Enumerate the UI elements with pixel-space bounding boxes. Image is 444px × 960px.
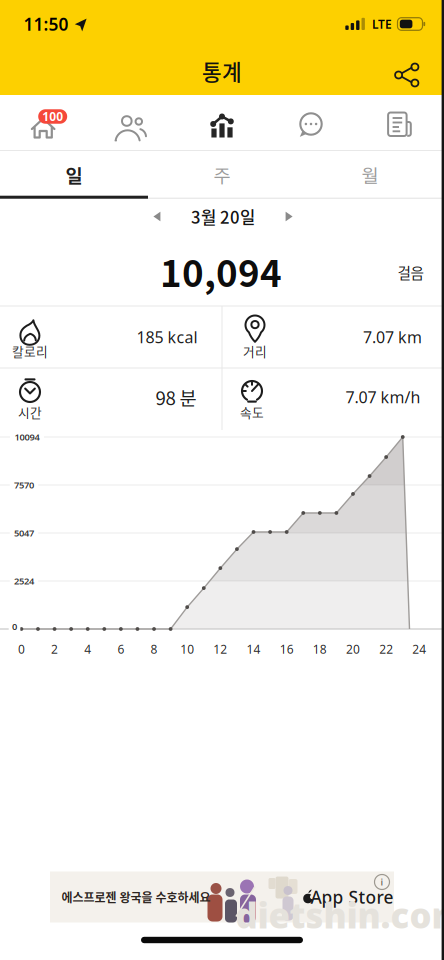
staticText: LTE — [372, 16, 392, 32]
staticText: 10 — [180, 641, 194, 657]
staticText: 11:50 — [23, 12, 68, 35]
button[interactable]: 월 — [296, 151, 444, 197]
button[interactable]: Statistics — [178, 95, 266, 149]
staticText: 2524 — [14, 575, 34, 587]
button[interactable]: Next day — [269, 196, 309, 236]
staticText: 4 — [84, 641, 91, 657]
staticText: 8 — [150, 641, 157, 657]
staticText: 18 — [313, 641, 327, 657]
staticText: 에스프로젠 왕국을 수호하세요 — [61, 888, 210, 906]
staticText: 20 — [346, 641, 360, 657]
staticText: dietshin.com — [235, 892, 444, 938]
staticText: 5047 — [14, 527, 34, 539]
staticText: 칼로리 — [12, 342, 48, 360]
staticText: 주 — [213, 161, 230, 188]
staticText: 2 — [51, 641, 58, 657]
staticText: 16 — [280, 641, 294, 657]
button[interactable]: Chat — [267, 95, 355, 149]
staticText: 3월 20일 — [191, 204, 255, 228]
staticText: 12 — [213, 641, 227, 657]
button[interactable]: Share — [392, 60, 422, 90]
button[interactable]: News — [356, 95, 444, 149]
staticText: 시간 — [18, 403, 42, 421]
button[interactable]: 일 — [0, 151, 148, 197]
staticText: 6 — [117, 641, 124, 657]
staticText: 속도 — [240, 403, 264, 421]
staticText: i — [380, 876, 383, 888]
staticText: 거리 — [243, 342, 267, 360]
staticText: 10,094 — [160, 244, 282, 298]
button[interactable]: Ad: 에스프로젠 왕국을 수호하세요 - App Store — [50, 871, 394, 922]
staticText: 98 분 — [155, 383, 196, 410]
staticText: 0 — [18, 641, 25, 657]
staticText: 100 — [42, 108, 63, 124]
staticText: 7570 — [14, 479, 34, 491]
staticText: 10094 — [14, 431, 39, 443]
staticText: 걸음 — [397, 261, 423, 283]
staticText: 통계 — [202, 56, 242, 86]
button[interactable]: Home — [0, 95, 88, 149]
button[interactable]: Friends — [89, 95, 177, 149]
staticText: App Store — [310, 885, 393, 908]
staticText: 7.07 km — [363, 326, 422, 348]
staticText: 22 — [379, 641, 393, 657]
staticText: 24 — [412, 641, 426, 657]
staticText: 14 — [246, 641, 260, 657]
staticText: 7.07 km/h — [345, 386, 420, 408]
staticText: 일 — [65, 161, 82, 188]
button[interactable]: Previous day — [137, 196, 177, 236]
button[interactable]: 주 — [148, 151, 296, 197]
staticText: 월 — [361, 161, 378, 188]
staticText: 0 — [12, 620, 17, 633]
staticText: 185 kcal — [136, 326, 197, 348]
